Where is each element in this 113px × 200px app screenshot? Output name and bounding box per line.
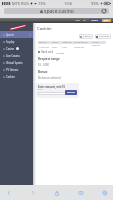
staticText: EN <box>83 19 87 22</box>
staticText: TV Games <box>6 68 19 72</box>
staticText: Help <box>75 19 81 22</box>
staticText: 93% <box>91 1 99 6</box>
staticText: Bonus <box>38 70 48 74</box>
staticText: 10 - 5000 <box>38 63 50 67</box>
staticText: 1:06 <box>64 1 72 6</box>
staticText: 13% <box>38 1 46 6</box>
button[interactable]: Reload page <box>101 8 107 14</box>
staticText: Wagering <box>62 41 74 44</box>
button[interactable]: Casino <box>3 45 31 52</box>
staticText: Casino <box>6 47 15 51</box>
staticText: Deposit <box>92 44 100 47</box>
staticText: 0.00 EUR <box>39 45 52 48</box>
button[interactable]: Bookmarks <box>73 185 88 200</box>
staticText: space.casino <box>44 8 74 14</box>
staticText: No bonus selected <box>38 76 61 80</box>
button[interactable]: Share <box>49 185 64 200</box>
staticText: Bank card <box>41 50 54 54</box>
staticText: Sports <box>6 33 14 37</box>
button[interactable]: Withdraw <box>96 35 110 38</box>
button[interactable]: LOGIN <box>91 19 99 22</box>
button[interactable]: Deposit <box>67 91 75 94</box>
staticText: Bonus <box>52 41 62 44</box>
staticText: JOIN <box>104 19 109 22</box>
staticText: Cashier <box>37 26 53 32</box>
staticText: Deposit <box>83 35 92 38</box>
staticText: change <box>56 51 65 54</box>
staticText: Actions <box>92 41 105 44</box>
button[interactable]: Back <box>1 185 16 200</box>
button[interactable]: In-play <box>3 38 31 45</box>
staticText: Withdrawable <box>74 41 92 44</box>
staticText: Deposit <box>67 91 75 94</box>
staticText: 0.00 <box>52 45 62 48</box>
staticText: Withdraw <box>99 35 110 38</box>
button[interactable]: Forward <box>25 185 40 200</box>
staticText: In-play <box>6 40 15 44</box>
button[interactable]: TV Games <box>3 66 31 73</box>
staticText: Virtual Sports <box>6 61 23 65</box>
staticText: EUR <box>38 88 42 91</box>
button[interactable]: Live Casino <box>3 52 31 59</box>
staticText: Live Casino <box>6 54 20 58</box>
button[interactable]: Cashier <box>3 73 31 80</box>
staticText: Cashier <box>6 75 16 79</box>
button[interactable] <box>38 92 66 95</box>
staticText: Request range <box>38 57 60 61</box>
staticText: Enter amount, min 10 <box>38 85 65 88</box>
staticText: LOGIN <box>91 19 99 22</box>
staticText: MTS RUS <box>12 1 29 6</box>
button[interactable]: JOIN <box>104 19 109 22</box>
button[interactable]: Virtual Sports <box>3 59 31 66</box>
button[interactable]: Sports <box>3 31 31 38</box>
staticText: 0.00 EUR <box>74 45 92 48</box>
staticText: 0.00 <box>62 45 74 48</box>
button[interactable]: Deposit <box>80 35 92 38</box>
staticText: Balance <box>39 41 52 44</box>
button[interactable]: Tabs <box>97 185 112 200</box>
button[interactable]: space.casino <box>4 8 109 14</box>
